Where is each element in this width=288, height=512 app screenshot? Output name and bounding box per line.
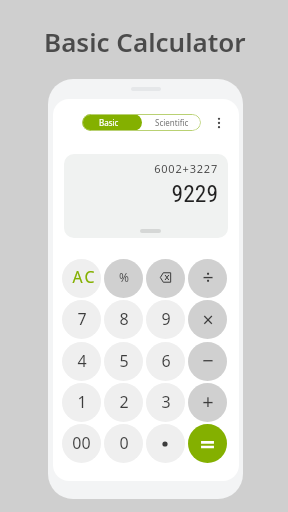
staticText: − bbox=[202, 347, 214, 374]
button[interactable]: % bbox=[104, 259, 143, 298]
button[interactable]: ÷ bbox=[188, 259, 227, 298]
button[interactable]: AC bbox=[62, 259, 101, 298]
button[interactable]: 4 bbox=[62, 342, 101, 381]
staticText: 9 bbox=[161, 308, 171, 330]
staticText: 2 bbox=[119, 391, 129, 413]
button[interactable]: 0 bbox=[104, 424, 143, 463]
button[interactable]: − bbox=[188, 342, 227, 381]
button[interactable]: Decimal point bbox=[146, 424, 185, 463]
button[interactable]: Basic bbox=[82, 114, 142, 131]
button[interactable]: 5 bbox=[104, 342, 143, 381]
staticText: 6002+3227 bbox=[64, 161, 218, 176]
staticText: Basic bbox=[99, 117, 119, 128]
staticText: 3 bbox=[161, 391, 171, 413]
staticText: % bbox=[119, 269, 129, 285]
staticText: + bbox=[202, 388, 214, 415]
staticText: × bbox=[202, 306, 214, 333]
button[interactable]: Backspace bbox=[146, 259, 185, 298]
button[interactable]: 2 bbox=[104, 383, 143, 422]
staticText: 7 bbox=[77, 308, 87, 330]
staticText: 00 bbox=[72, 432, 91, 454]
button[interactable]: + bbox=[188, 383, 227, 422]
button[interactable]: 00 bbox=[62, 424, 101, 463]
staticText: 8 bbox=[119, 308, 129, 330]
button[interactable]: × bbox=[188, 300, 227, 339]
staticText: ÷ bbox=[202, 263, 214, 290]
staticText: AC bbox=[72, 266, 97, 288]
button[interactable]: 6 bbox=[146, 342, 185, 381]
staticText: 9229 bbox=[64, 180, 218, 208]
staticText: 5 bbox=[119, 350, 129, 372]
staticText: Scientific bbox=[155, 117, 189, 128]
button[interactable]: 3 bbox=[146, 383, 185, 422]
staticText: 1 bbox=[77, 391, 87, 413]
staticText: Basic Calculator bbox=[44, 24, 246, 54]
staticText: 6 bbox=[161, 350, 171, 372]
button[interactable]: 1 bbox=[62, 383, 101, 422]
button[interactable]: Equals bbox=[188, 424, 227, 463]
button[interactable]: Scientific bbox=[142, 114, 201, 131]
staticText: 0 bbox=[119, 432, 129, 454]
button[interactable]: 8 bbox=[104, 300, 143, 339]
button[interactable]: More options bbox=[207, 111, 231, 135]
button[interactable]: 7 bbox=[62, 300, 101, 339]
button[interactable]: 9 bbox=[146, 300, 185, 339]
staticText: 4 bbox=[77, 350, 87, 372]
